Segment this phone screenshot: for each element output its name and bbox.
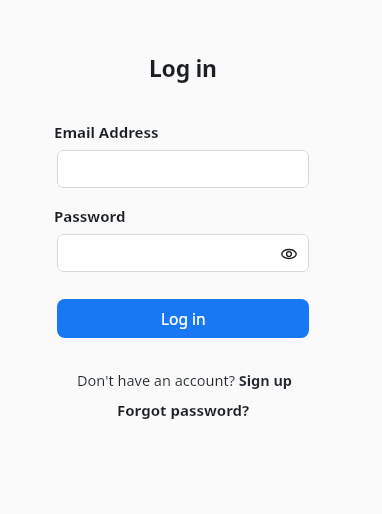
staticText: Don't have an account? Sign up	[77, 370, 293, 390]
staticText: Log in	[161, 308, 206, 329]
button[interactable]: Log in	[57, 299, 309, 338]
button[interactable]	[57, 150, 309, 188]
staticText: Log in	[149, 52, 217, 83]
button[interactable]: Don't have an account? Sign up	[77, 370, 293, 390]
staticText: Forgot password?	[117, 400, 250, 420]
button[interactable]: Forgot password?	[117, 400, 250, 420]
staticText: Password	[54, 206, 126, 226]
button[interactable]	[277, 242, 301, 266]
button[interactable]	[57, 234, 309, 272]
staticText: Email Address	[54, 122, 159, 142]
